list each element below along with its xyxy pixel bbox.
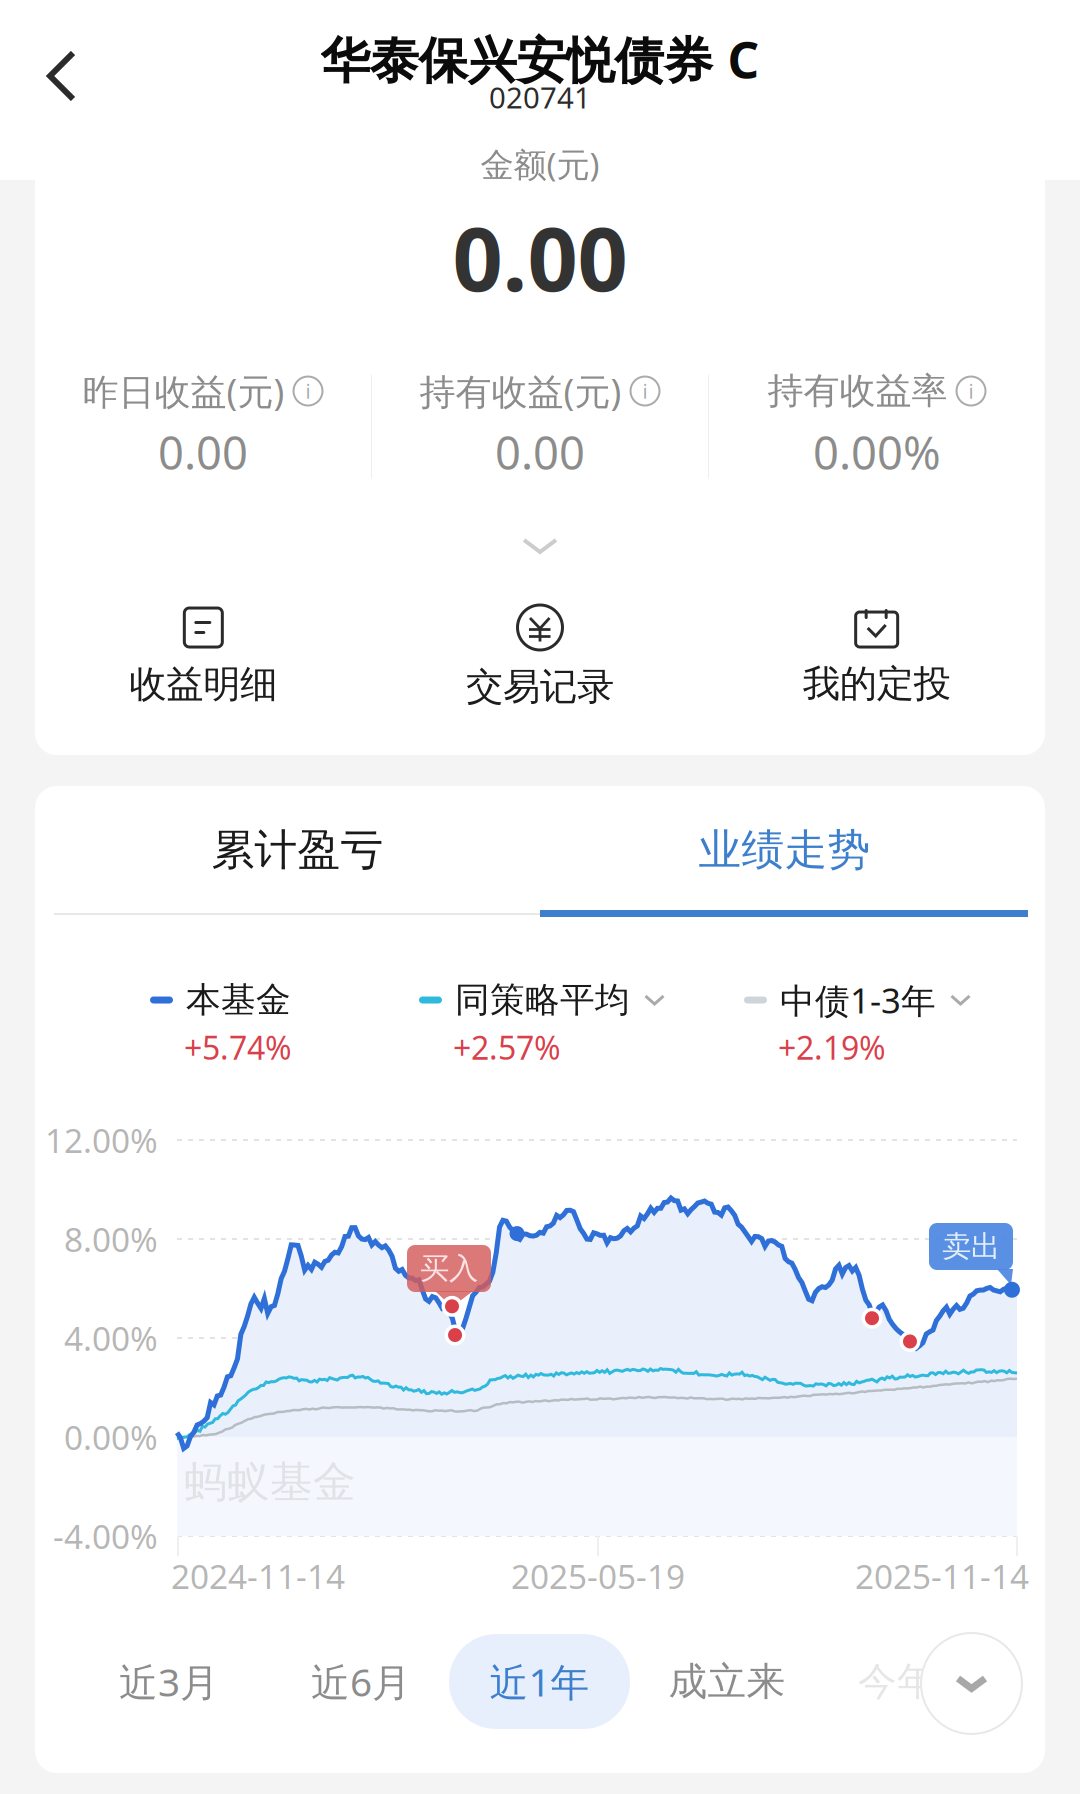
staticText: 卖出 — [942, 1228, 1000, 1264]
staticText: +2.57% — [453, 1026, 561, 1068]
staticText: 0.00% — [813, 422, 941, 482]
staticText: 近3月 — [119, 1656, 219, 1707]
staticText: 华泰保兴安悦债券 C — [320, 26, 759, 92]
staticText: 12.00% — [45, 1118, 158, 1162]
staticText: 成立来 — [668, 1658, 785, 1705]
button[interactable]: More ranges — [921, 1633, 1022, 1734]
staticText: 收益明细 — [129, 661, 277, 707]
button[interactable]: 成立来 — [637, 1634, 817, 1729]
staticText: 业绩走势 — [698, 824, 870, 876]
staticText: 4.00% — [64, 1316, 158, 1360]
staticText: 累计盈亏 — [211, 824, 383, 876]
staticText: 0.00 — [158, 422, 248, 482]
button[interactable]: 收益明细 — [35, 607, 372, 707]
staticText: 蚂蚁基金 — [184, 1456, 356, 1508]
button[interactable]: Back — [23, 26, 100, 126]
button[interactable]: Show more — [504, 520, 576, 572]
staticText: 2025-11-14 — [855, 1554, 1029, 1598]
staticText: 020741 — [489, 77, 591, 116]
button[interactable]: 近1年 — [449, 1634, 630, 1729]
staticText: 今年 — [858, 1658, 936, 1705]
staticText: 本基金 — [186, 979, 291, 1021]
staticText: 近6月 — [311, 1656, 411, 1707]
staticText: i — [305, 378, 310, 404]
button[interactable]: 累计盈亏 — [54, 805, 541, 895]
staticText: 中债1-3年 — [780, 977, 936, 1023]
button[interactable]: 业绩走势 — [541, 805, 1028, 895]
staticText: 我的定投 — [803, 661, 951, 707]
staticText: 0.00% — [64, 1415, 158, 1459]
staticText: 0.00 — [452, 199, 627, 315]
staticText: 昨日收益(元) — [82, 367, 284, 415]
staticText: 0.00 — [495, 422, 585, 482]
button[interactable]: 今年 — [822, 1634, 972, 1729]
staticText: 2025-05-19 — [511, 1554, 685, 1598]
staticText: 2024-11-14 — [171, 1554, 345, 1598]
staticText: +5.74% — [184, 1026, 292, 1068]
staticText: -4.00% — [53, 1514, 158, 1558]
button[interactable]: 近6月 — [271, 1634, 451, 1729]
staticText: +2.19% — [778, 1026, 886, 1068]
staticText: 持有收益(元) — [419, 367, 621, 415]
staticText: i — [968, 378, 973, 404]
staticText: 金额(元) — [480, 142, 599, 186]
staticText: 买入 — [420, 1250, 478, 1286]
staticText: 持有收益率 — [767, 369, 947, 413]
button[interactable]: 近3月 — [79, 1634, 259, 1729]
staticText: 8.00% — [64, 1217, 158, 1261]
staticText: 近1年 — [489, 1656, 589, 1707]
staticText: 交易记录 — [466, 664, 614, 710]
staticText: 同策略平均 — [455, 979, 630, 1021]
staticText: i — [642, 378, 647, 404]
button[interactable]: 交易记录 — [372, 605, 708, 710]
button[interactable]: 我的定投 — [708, 608, 1045, 707]
